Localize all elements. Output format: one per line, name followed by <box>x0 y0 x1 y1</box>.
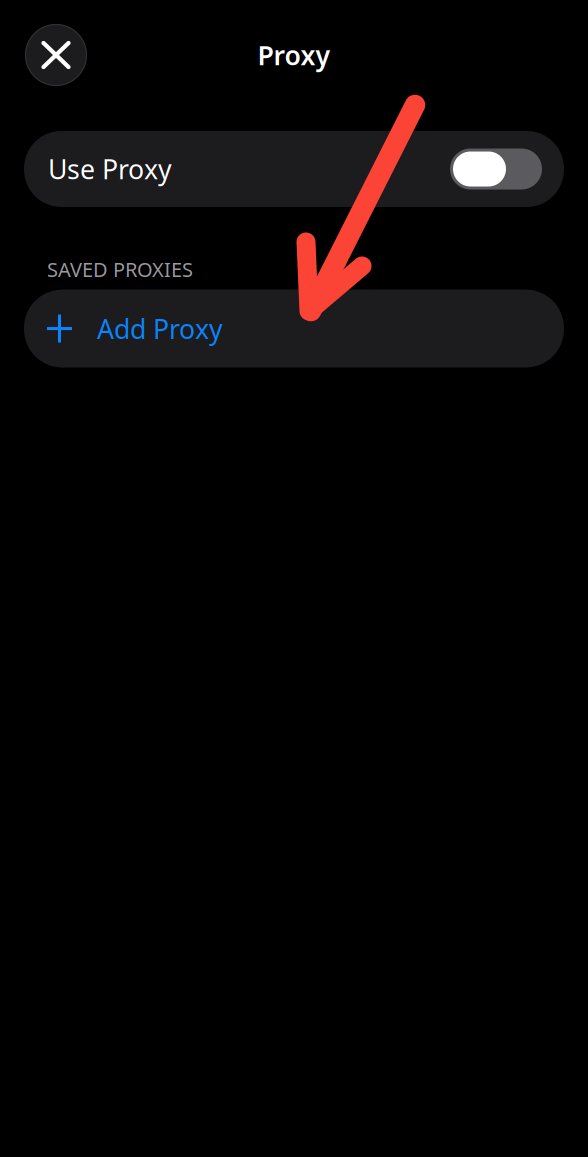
button[interactable]: Add Proxy <box>0 290 588 368</box>
staticText: Proxy <box>257 37 330 73</box>
button[interactable]: Close <box>24 24 88 86</box>
staticText: SAVED PROXIES <box>47 256 193 283</box>
button[interactable]: Use Proxy <box>0 131 588 207</box>
staticText: Add Proxy <box>97 311 223 346</box>
staticText: Use Proxy <box>48 151 172 187</box>
